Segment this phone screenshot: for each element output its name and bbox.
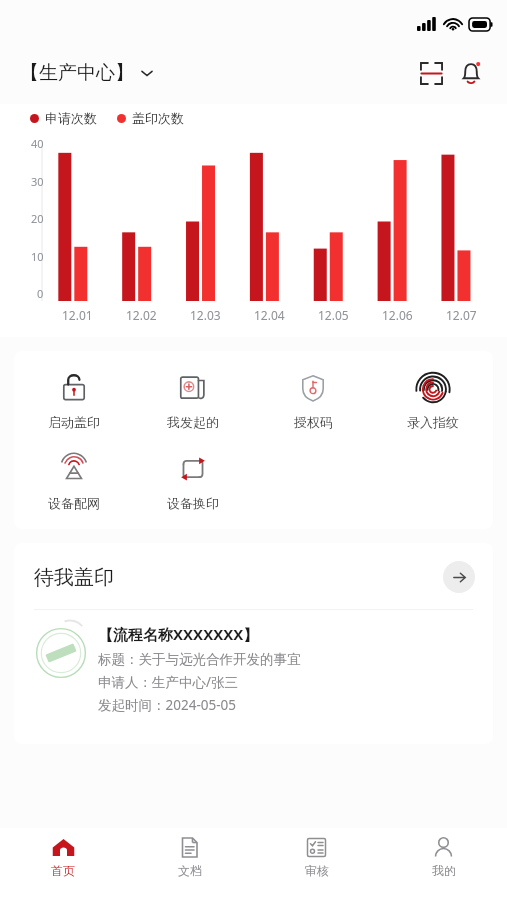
staticText: 发起时间：2024-05-05 <box>98 696 236 714</box>
button[interactable]: 审核 <box>253 828 380 900</box>
staticText: 12.06 <box>382 307 413 323</box>
button[interactable]: 【流程名称XXXXXXX】 <box>14 610 493 714</box>
staticText: 申请次数 <box>45 110 97 126</box>
staticText: 12.01 <box>62 307 93 323</box>
staticText: 12.07 <box>446 307 477 323</box>
button[interactable]: 设备换印 <box>133 448 253 515</box>
staticText: 设备配网 <box>48 495 100 511</box>
staticText: 【生产中心】 <box>20 61 134 85</box>
button[interactable]: 我发起的 <box>133 367 253 434</box>
staticText: 设备换印 <box>167 495 219 511</box>
staticText: 首页 <box>51 863 75 878</box>
button[interactable]: 授权码 <box>253 367 373 434</box>
staticText: 申请人：生产中心/张三 <box>98 673 239 691</box>
button[interactable]: 录入指纹 <box>373 367 493 434</box>
staticText: 10 <box>31 249 44 264</box>
button[interactable]: 首页 <box>0 828 126 900</box>
staticText: 录入指纹 <box>407 414 459 430</box>
button[interactable]: 【生产中心】 <box>20 57 154 89</box>
staticText: 30 <box>31 174 44 189</box>
staticText: 【流程名称XXXXXXX】 <box>98 624 259 644</box>
staticText: 标题：关于与远光合作开发的事宜 <box>98 651 301 668</box>
staticText: 待我盖印 <box>34 565 114 590</box>
button[interactable]: 待我盖印 <box>14 543 493 609</box>
staticText: 启动盖印 <box>48 414 100 430</box>
button[interactable]: 我的 <box>380 828 507 900</box>
staticText: 授权码 <box>294 414 333 430</box>
button[interactable]: Scan <box>411 53 451 93</box>
staticText: 12.03 <box>190 307 221 323</box>
staticText: 12.02 <box>126 307 157 323</box>
staticText: 我的 <box>432 863 456 878</box>
staticText: 我发起的 <box>167 414 219 430</box>
button[interactable]: 启动盖印 <box>14 367 133 434</box>
staticText: 12.04 <box>254 307 285 323</box>
other: More <box>443 561 475 593</box>
staticText: 盖印次数 <box>132 110 184 126</box>
staticText: 12.05 <box>318 307 349 323</box>
button[interactable]: 设备配网 <box>14 448 133 515</box>
staticText: 0 <box>37 286 44 301</box>
button[interactable]: Notifications <box>451 53 491 93</box>
staticText: 文档 <box>178 863 202 878</box>
staticText: 20 <box>31 211 44 226</box>
staticText: 40 <box>31 136 44 151</box>
staticText: 审核 <box>305 863 329 878</box>
button[interactable]: 文档 <box>126 828 253 900</box>
